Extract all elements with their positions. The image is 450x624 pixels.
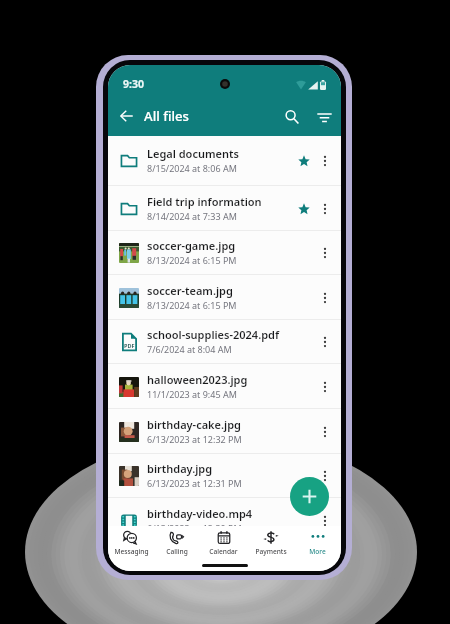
button[interactable]: More options [314,150,336,172]
button[interactable]: birthday-cake.jpg [108,409,341,454]
button[interactable]: Calendar [200,526,247,560]
button[interactable]: More options [314,421,336,443]
button[interactable]: PDF [108,320,341,364]
button[interactable]: More options [314,465,336,487]
staticText: 8/14/2024 at 7:33 AM [147,210,237,222]
staticText: school-supplies-2024.pdf [147,327,280,342]
button[interactable]: soccer-game.jpg [108,231,341,275]
staticText: 6/13/2023 at 12:31 PM [147,477,242,489]
staticText: birthday-cake.jpg [147,417,241,432]
button[interactable]: More options [314,376,336,398]
button[interactable]: Legal documents [108,136,341,186]
staticText: More [309,547,326,556]
staticText: soccer-team.jpg [147,283,233,298]
staticText: birthday-video.mp4 [147,506,253,521]
button[interactable]: More options [314,510,336,532]
staticText: soccer-game.jpg [147,238,236,253]
staticText: 7/6/2024 at 8:04 AM [147,343,232,355]
staticText: 11/1/2023 at 9:45 AM [147,388,237,400]
staticText: 6/13/2023 at 12:32 PM [147,433,242,445]
button[interactable]: Field trip information [108,186,341,231]
button[interactable]: Starred [293,198,315,220]
button[interactable]: Back [112,102,140,130]
staticText: Messaging [114,547,149,556]
button[interactable]: birthday.jpg [108,454,341,498]
staticText: PDF [124,342,135,349]
staticText: Payments [255,547,287,556]
staticText: 9:30 [123,77,144,91]
button[interactable]: More options [314,242,336,264]
staticText: Calendar [209,547,238,556]
button[interactable]: Search [277,102,307,132]
button[interactable]: birthday-video.mp4 [108,498,341,543]
staticText: 8/15/2024 at 8:06 AM [147,162,237,174]
staticText: Field trip information [147,194,262,209]
staticText: 6/13/2023 at 12:30 PM [147,522,242,534]
staticText: 8/13/2024 at 6:15 PM [147,299,237,311]
button[interactable]: Calling [154,526,200,560]
staticText: 8/13/2024 at 6:15 PM [147,254,237,266]
button[interactable]: Messaging [108,526,154,560]
button[interactable]: More options [314,287,336,309]
button[interactable]: Add [290,477,329,516]
button[interactable]: Payments [247,526,294,560]
button[interactable]: More options [314,198,336,220]
button[interactable]: Filter [309,102,339,132]
button[interactable]: halloween2023.jpg [108,364,341,409]
staticText: halloween2023.jpg [147,372,248,387]
staticText: Calling [166,547,188,556]
button[interactable]: More options [314,331,336,353]
staticText: Legal documents [147,146,239,161]
staticText: All files [144,107,189,125]
staticText: birthday.jpg [147,461,213,476]
button[interactable]: More [294,526,341,560]
button[interactable]: Starred [293,150,315,172]
button[interactable]: soccer-team.jpg [108,275,341,320]
